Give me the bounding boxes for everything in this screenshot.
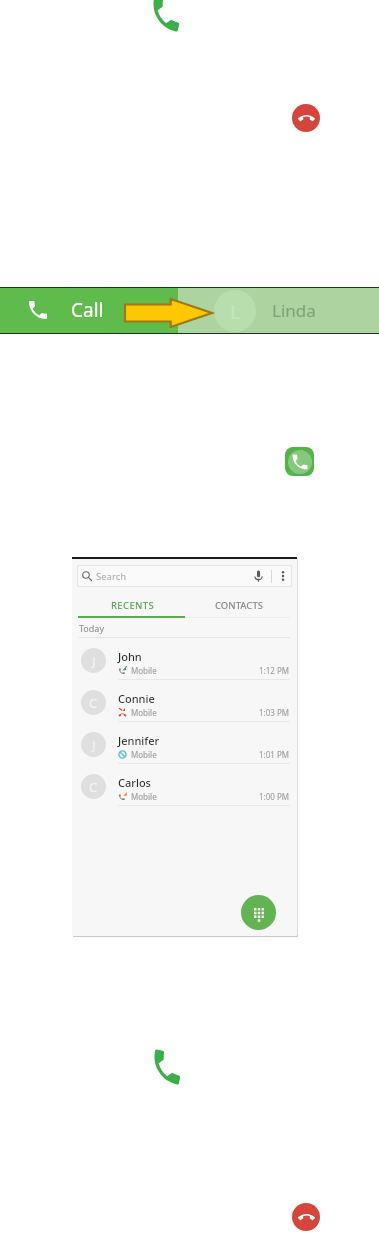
button[interactable]: CONTACTS — [184, 587, 297, 618]
staticText: John — [118, 649, 142, 664]
staticText: 1:00 PM — [259, 791, 290, 802]
staticText: Mobile — [131, 791, 157, 802]
staticText: Call — [71, 297, 104, 323]
staticText: Linda — [272, 299, 316, 322]
staticText: L — [230, 298, 241, 325]
staticText: J — [92, 652, 96, 670]
staticText: Mobile — [131, 665, 157, 676]
button[interactable]: C — [72, 680, 297, 722]
staticText: C — [89, 694, 98, 712]
button[interactable]: Search — [77, 565, 292, 587]
button[interactable]: Phone app — [285, 447, 314, 476]
staticText: Search — [96, 570, 127, 583]
button[interactable]: J — [72, 722, 297, 764]
staticText: RECENTS — [111, 599, 155, 612]
staticText: Jennifer — [118, 733, 160, 748]
staticText: Carlos — [118, 775, 151, 790]
staticText: Today — [79, 622, 104, 634]
staticText: 1:01 PM — [259, 749, 290, 760]
staticText: J — [92, 736, 96, 754]
staticText: Mobile — [131, 707, 157, 718]
staticText: C — [89, 778, 98, 796]
button[interactable]: J — [72, 638, 297, 680]
staticText: Connie — [118, 691, 155, 706]
staticText: 1:03 PM — [259, 707, 290, 718]
staticText: 1:12 PM — [259, 665, 290, 676]
button[interactable]: Dialpad — [241, 895, 276, 930]
button[interactable]: End call — [292, 104, 320, 132]
staticText: Mobile — [131, 749, 157, 760]
button[interactable]: End call — [292, 1203, 320, 1231]
staticText: CONTACTS — [215, 599, 263, 612]
button[interactable]: RECENTS — [72, 587, 184, 618]
button[interactable]: Call — [26, 297, 104, 323]
button[interactable]: C — [72, 764, 297, 806]
